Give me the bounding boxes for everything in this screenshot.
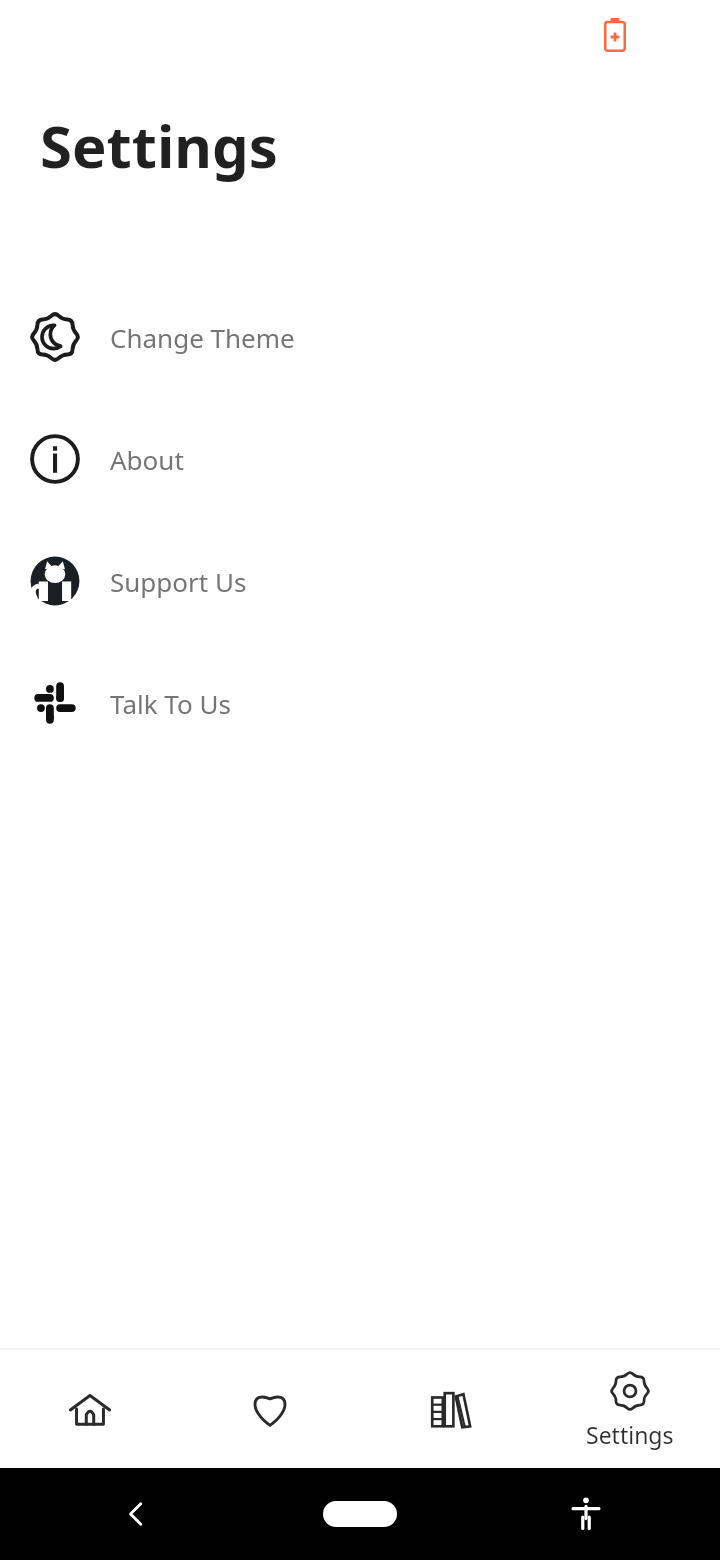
button[interactable]: Back	[112, 1490, 160, 1538]
staticText: Support Us	[110, 564, 247, 599]
button[interactable]: About	[0, 398, 720, 520]
staticText: About	[110, 442, 184, 477]
button[interactable]: Home	[0, 1350, 180, 1468]
button[interactable]: Favorites	[180, 1350, 360, 1468]
staticText: Settings	[586, 1419, 674, 1450]
button[interactable]: Support Us	[0, 520, 720, 642]
staticText: Talk To Us	[110, 686, 231, 721]
button[interactable]: Library	[360, 1350, 540, 1468]
staticText: Change Theme	[110, 320, 295, 355]
button[interactable]: Change Theme	[0, 276, 720, 398]
button[interactable]: Talk To Us	[0, 642, 720, 764]
button[interactable]: Accessibility	[562, 1490, 610, 1538]
button[interactable]: Settings	[540, 1350, 720, 1468]
staticText: Settings	[40, 106, 278, 185]
button[interactable]: Home	[323, 1501, 397, 1527]
